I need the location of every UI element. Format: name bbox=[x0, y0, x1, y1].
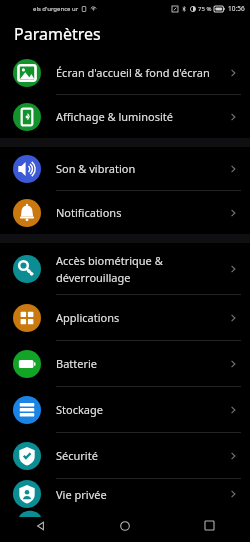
button[interactable]: Back bbox=[25, 513, 57, 538]
staticText: 75 % bbox=[198, 5, 212, 13]
button[interactable]: Écran d'accueil & fond d'écran bbox=[0, 51, 250, 95]
staticText: Accès biométrique & bbox=[56, 253, 163, 268]
button[interactable]: Batterie bbox=[0, 341, 250, 387]
staticText: 10:56 bbox=[228, 4, 245, 13]
button[interactable]: Affichage & luminosité bbox=[0, 95, 250, 138]
button[interactable]: Recent apps bbox=[193, 513, 225, 538]
staticText: Son & vibration bbox=[56, 161, 136, 176]
staticText: Sécurité bbox=[56, 448, 98, 463]
button[interactable]: Accès biométrique & bbox=[0, 243, 250, 295]
staticText: Affichage & luminosité bbox=[56, 109, 173, 124]
staticText: els d'urgence ur bbox=[33, 5, 79, 13]
staticText: Paramètres bbox=[14, 23, 101, 45]
staticText: Vie privée bbox=[56, 487, 107, 502]
button[interactable]: Applications bbox=[0, 295, 250, 341]
staticText: déverrouillage bbox=[56, 270, 131, 285]
staticText: Batterie bbox=[56, 356, 98, 371]
staticText: Applications bbox=[56, 310, 120, 325]
button[interactable]: Notifications bbox=[0, 191, 250, 234]
staticText: Stockage bbox=[56, 402, 103, 417]
button[interactable]: Son & vibration bbox=[0, 147, 250, 191]
staticText: Écran d'accueil & fond d'écran bbox=[56, 65, 210, 80]
button[interactable]: Vie privée bbox=[0, 479, 250, 509]
button[interactable]: Stockage bbox=[0, 387, 250, 433]
button[interactable]: Home bbox=[109, 513, 141, 538]
staticText: Notifications bbox=[56, 205, 122, 220]
button[interactable]: Sécurité bbox=[0, 433, 250, 479]
